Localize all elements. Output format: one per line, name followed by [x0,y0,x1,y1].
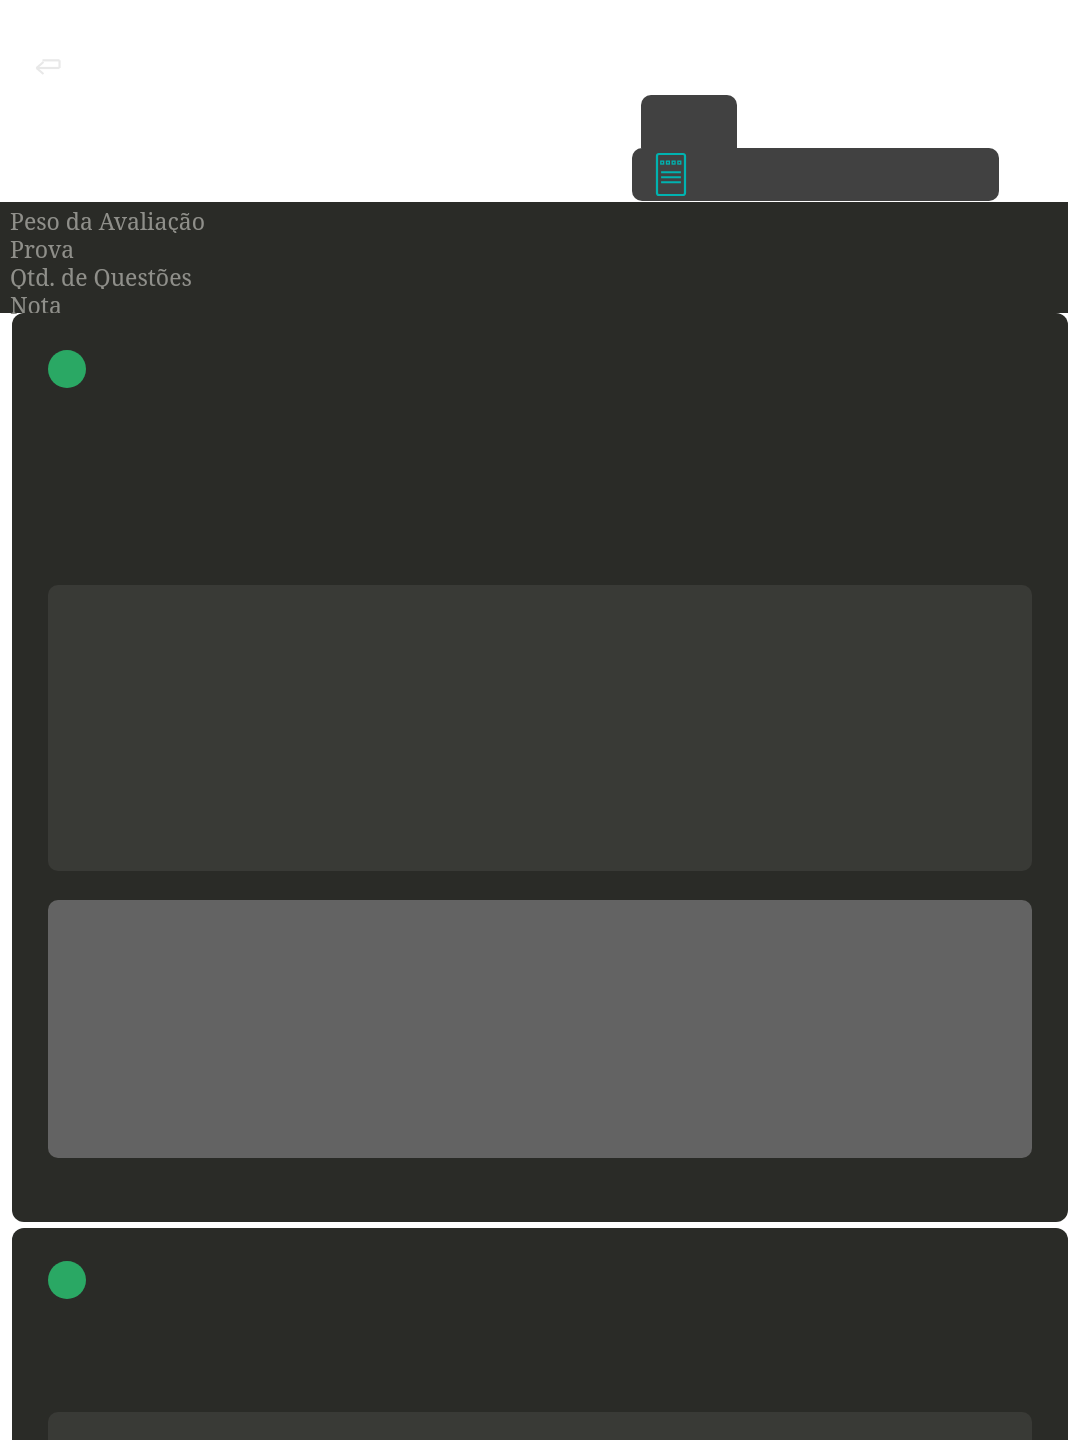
staticText: Peso da Avaliação [10,205,205,233]
button[interactable] [12,1228,1068,1440]
button[interactable]: Back [24,44,72,92]
button[interactable]: Document [632,148,999,201]
button[interactable] [12,313,1068,1222]
other: Document [656,153,686,196]
staticText: Qtd. de Questões [10,261,192,289]
button[interactable] [641,95,737,148]
staticText: Nota [10,289,62,316]
staticText: Prova [10,233,75,261]
